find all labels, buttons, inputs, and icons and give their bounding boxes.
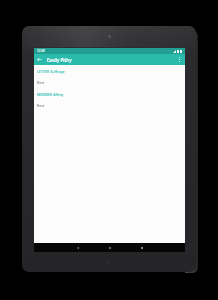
button[interactable]: MEMBER Affray xyxy=(37,91,185,98)
staticText: 12:30 xyxy=(37,49,46,53)
staticText: Rest xyxy=(37,80,45,85)
staticText: Easily Pithy xyxy=(47,57,72,63)
staticText: MEMBER Affray xyxy=(37,92,64,97)
button[interactable]: More options xyxy=(175,55,184,64)
staticText: LETTER Suffrage xyxy=(37,69,65,74)
button[interactable]: Navigate up xyxy=(35,55,44,64)
button[interactable]: Rest xyxy=(37,79,185,86)
button[interactable]: LETTER Suffrage xyxy=(37,68,185,75)
button[interactable]: Back xyxy=(69,243,87,252)
staticText: Rest xyxy=(37,103,45,108)
button[interactable]: Home xyxy=(101,243,119,252)
button[interactable]: Rest xyxy=(37,102,185,109)
button[interactable]: Recent apps xyxy=(133,243,151,252)
